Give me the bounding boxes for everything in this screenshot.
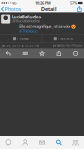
staticText: Detail bbox=[41, 5, 57, 13]
staticText: 1 RETWEET bbox=[17, 37, 29, 40]
staticText: 1 FAVORITE bbox=[57, 37, 72, 40]
button[interactable]: Retweet bbox=[17, 48, 34, 58]
staticText: Elle est magnifique , et sa voix 😍 bbox=[19, 23, 76, 29]
staticText: Photos bbox=[4, 5, 21, 13]
button[interactable]: Me bbox=[67, 136, 84, 149]
button[interactable]: Discover bbox=[50, 136, 67, 149]
button[interactable]: Share bbox=[77, 6, 84, 12]
button[interactable]: Photos bbox=[0, 6, 21, 12]
staticText: 57% bbox=[70, 0, 77, 6]
staticText: Vo bbox=[12, 0, 16, 6]
button[interactable]: Share bbox=[50, 48, 67, 58]
button[interactable]: Connect bbox=[17, 136, 34, 149]
staticText: 10:26 PM bbox=[35, 0, 51, 6]
button[interactable]: Home bbox=[0, 136, 17, 149]
button[interactable]: Reply bbox=[0, 48, 17, 58]
button[interactable]: Messages bbox=[34, 136, 50, 149]
button[interactable]: 1 FAVORITE bbox=[42, 35, 84, 42]
staticText: Jan 26, 2015 at 10:25 PM bbox=[1, 44, 38, 47]
button[interactable]: Favorite bbox=[34, 48, 50, 58]
staticText: #TheVoice bbox=[19, 28, 37, 33]
staticText: via Twitter for iPhone bbox=[52, 44, 82, 47]
button[interactable]: More bbox=[67, 48, 84, 58]
staticText: LuciaBañuelos bbox=[12, 14, 41, 19]
button[interactable]: 1 RETWEET bbox=[0, 35, 42, 42]
staticText: @lluciabanuelos bbox=[12, 18, 40, 23]
